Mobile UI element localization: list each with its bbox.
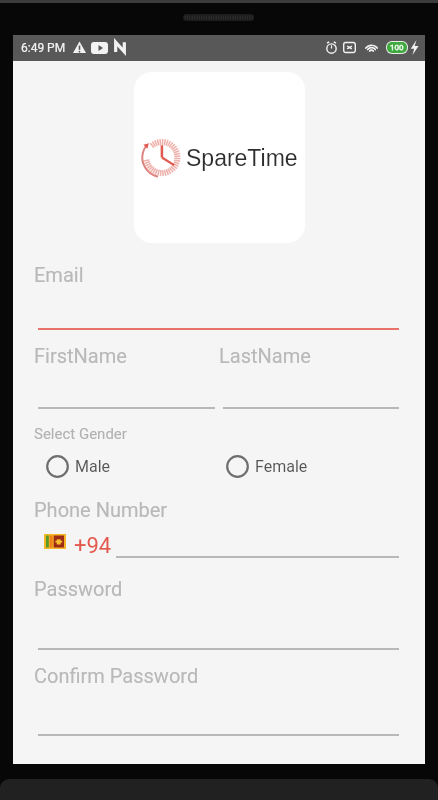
- button[interactable]: Male: [46, 455, 111, 478]
- button[interactable]: Email: [34, 256, 398, 330]
- staticText: SpareTime: [186, 145, 298, 171]
- staticText: Select Gender: [34, 425, 127, 443]
- button[interactable]: LastName: [219, 337, 399, 409]
- button[interactable]: FirstName: [34, 337, 215, 409]
- button[interactable]: Confirm Password: [34, 657, 399, 736]
- staticText: 100: [390, 43, 404, 52]
- staticText: +94: [74, 533, 112, 559]
- staticText: 6:49 PM: [21, 41, 66, 55]
- staticText: Password: [34, 577, 123, 600]
- button[interactable]: Phone Number: [34, 491, 399, 563]
- staticText: Email: [34, 263, 84, 286]
- button[interactable]: Female: [226, 455, 308, 478]
- staticText: Male: [75, 457, 111, 476]
- staticText: FirstName: [34, 344, 127, 367]
- staticText: Phone Number: [34, 498, 168, 521]
- button[interactable]: Password: [34, 570, 399, 650]
- staticText: LastName: [219, 344, 311, 367]
- button[interactable]: SpareTime: [134, 72, 305, 243]
- staticText: Confirm Password: [34, 664, 199, 687]
- staticText: Female: [255, 457, 308, 476]
